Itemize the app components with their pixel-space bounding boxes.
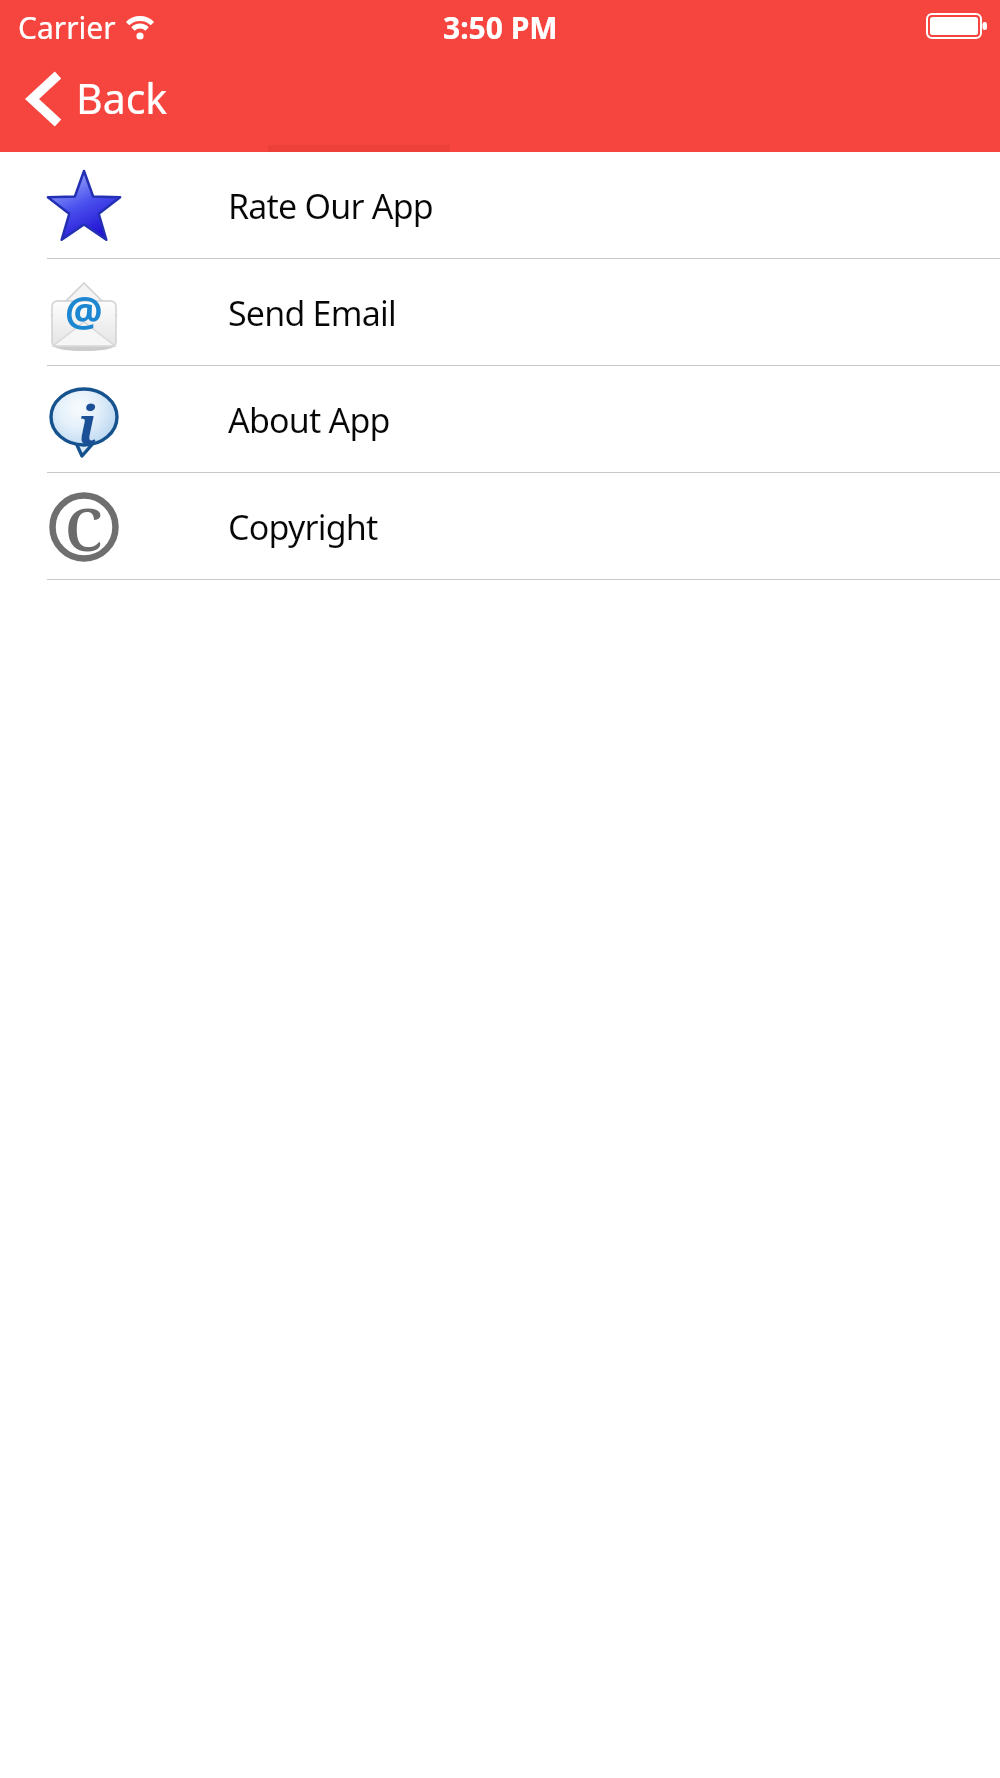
button[interactable]: Rate Our App [0,152,1000,259]
staticText: Rate Our App [228,183,433,229]
staticText: Send Email [228,290,396,336]
staticText: C [65,489,103,564]
staticText: Carrier [18,7,116,48]
button[interactable]: C [0,473,1000,580]
staticText: i [78,388,97,459]
staticText: About App [228,397,390,443]
staticText: Copyright [228,504,378,550]
staticText: Back [76,70,168,126]
staticText: 3:50 PM [443,7,558,48]
button[interactable]: @ [0,259,1000,366]
button[interactable]: i [0,366,1000,473]
button[interactable]: Back [28,62,168,138]
staticText: @ [65,282,103,339]
